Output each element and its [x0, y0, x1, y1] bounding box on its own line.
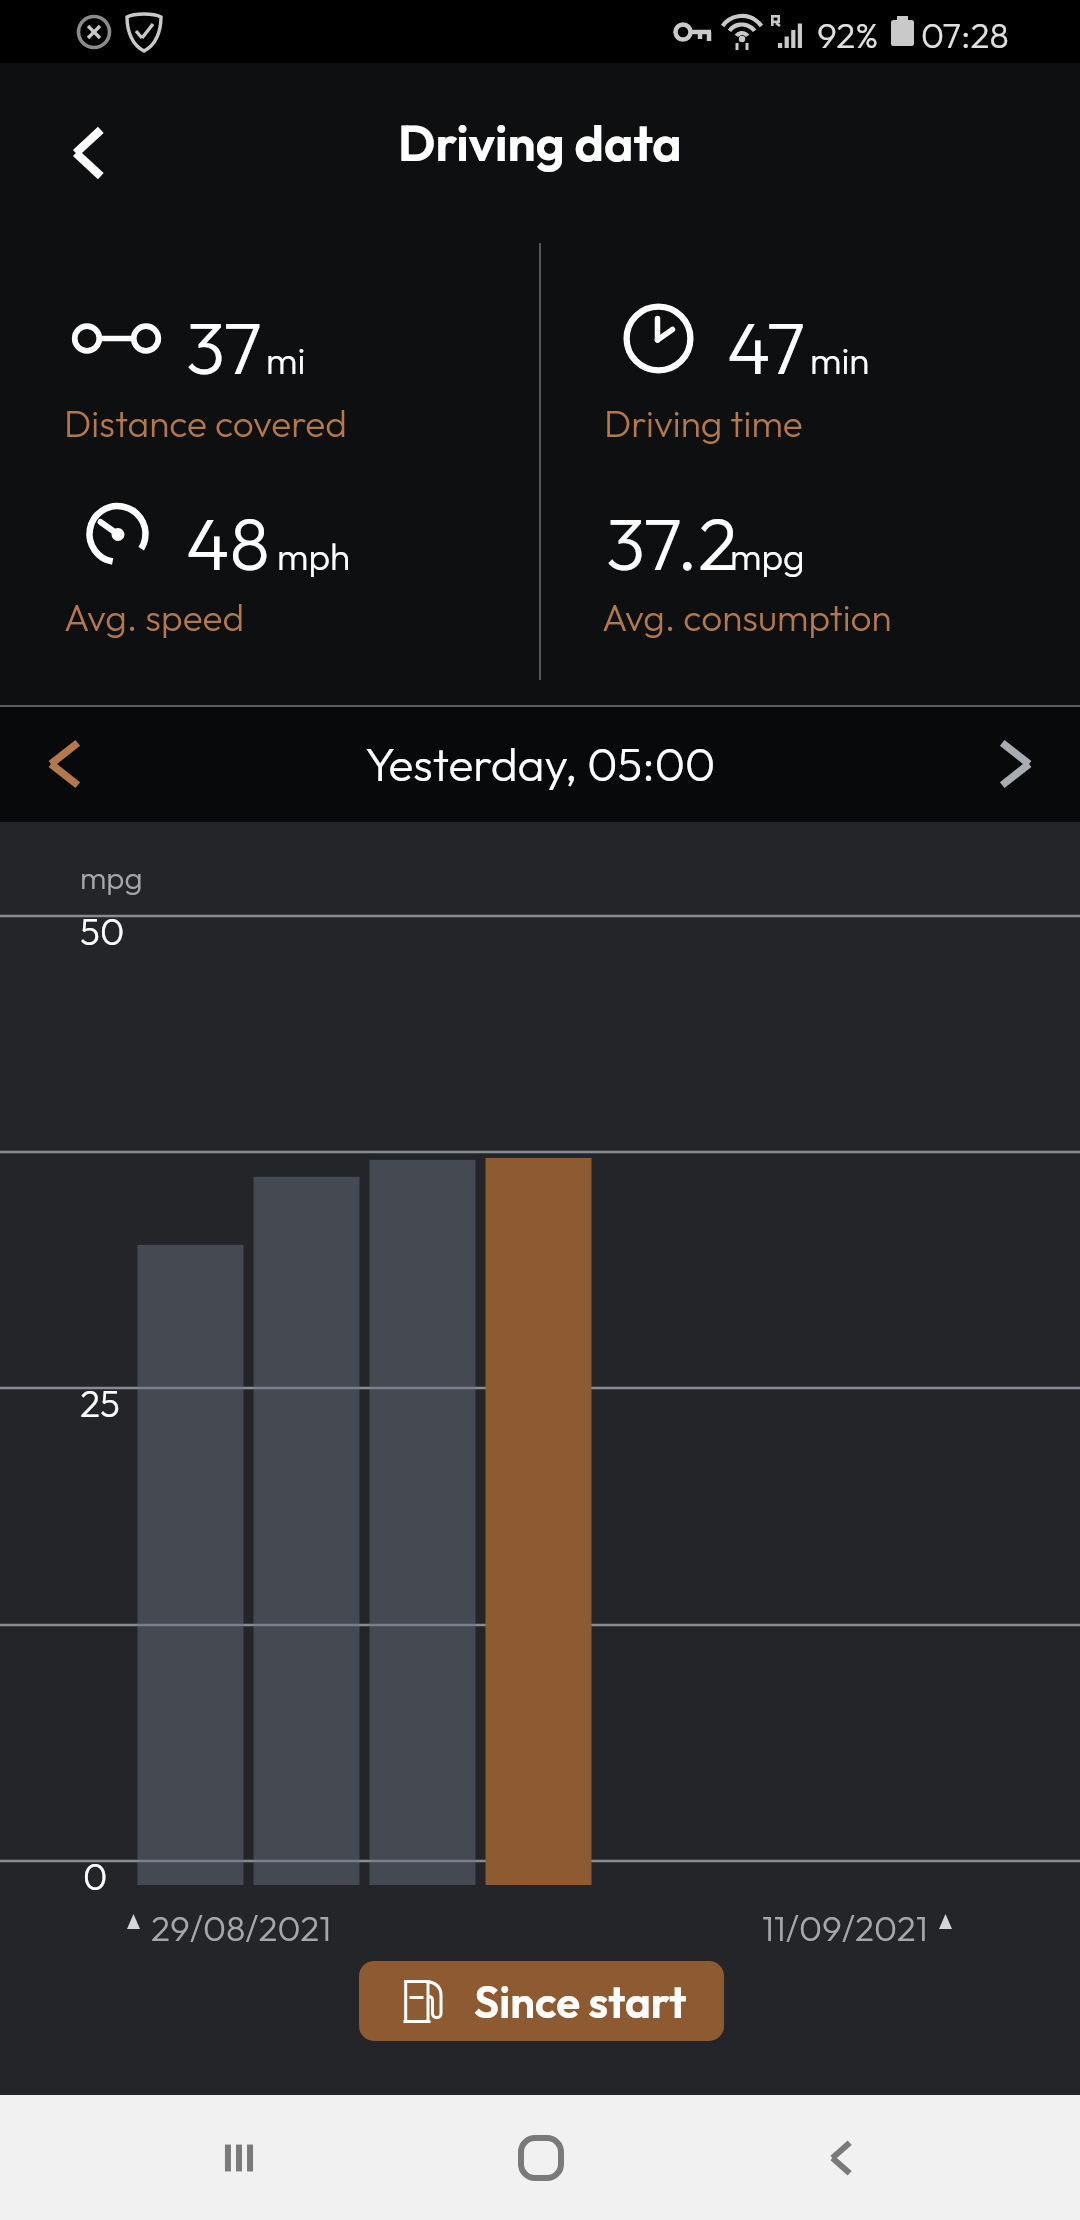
staticText: mph: [277, 533, 351, 580]
staticText: 92%: [817, 13, 879, 57]
staticText: Yesterday, 05:00: [365, 735, 716, 793]
staticText: 47: [727, 301, 806, 393]
staticText: 07:28: [921, 13, 1009, 57]
button[interactable]: Next day: [965, 714, 1065, 814]
staticText: Driving time: [604, 400, 803, 447]
button[interactable]: Previous day: [15, 714, 115, 814]
staticText: 0: [83, 1853, 108, 1900]
button[interactable]: Back: [779, 2095, 904, 2220]
staticText: 11/09/2021: [762, 1906, 928, 1950]
button[interactable]: Back: [38, 103, 138, 203]
staticText: 37: [186, 301, 262, 393]
staticText: 37.2: [606, 497, 738, 589]
staticText: mi: [266, 337, 306, 384]
button[interactable]: Since start: [359, 1961, 724, 2041]
button[interactable]: Recent apps: [176, 2095, 301, 2220]
staticText: Since start: [474, 1974, 687, 2029]
staticText: Avg. speed: [64, 594, 245, 641]
staticText: Distance covered: [64, 400, 347, 447]
button[interactable]: Home: [478, 2095, 603, 2220]
staticText: Avg. consumption: [602, 594, 892, 641]
staticText: 48: [186, 497, 270, 589]
staticText: mpg: [80, 858, 143, 897]
staticText: min: [810, 337, 870, 384]
staticText: mpg: [730, 533, 805, 580]
staticText: 29/08/2021: [151, 1906, 332, 1950]
staticText: 25: [80, 1380, 120, 1427]
staticText: Driving data: [398, 111, 682, 174]
staticText: 50: [80, 908, 125, 955]
